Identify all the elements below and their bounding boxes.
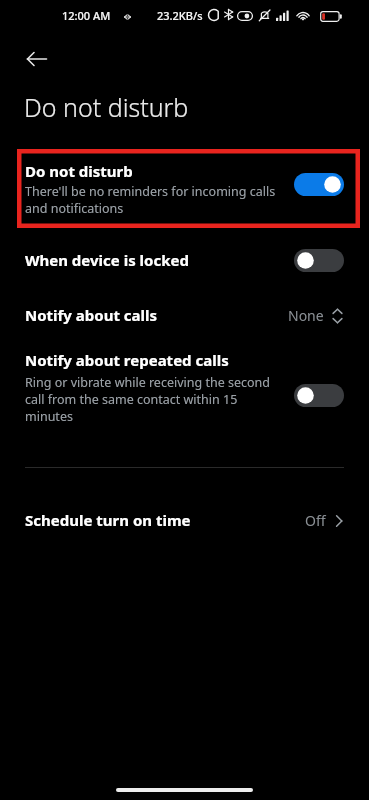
other: Change: [331, 307, 344, 325]
other: Open: [334, 512, 344, 530]
staticText: None: [288, 306, 324, 325]
button[interactable]: Notify about calls: [25, 298, 344, 332]
button[interactable]: Off: [294, 384, 344, 407]
staticText: Ring or vibrate while receiving the seco…: [25, 374, 275, 425]
button[interactable]: Back: [18, 40, 56, 78]
button[interactable]: Schedule turn on time: [25, 503, 344, 537]
button[interactable]: When device is locked: [25, 243, 344, 277]
button[interactable]: Do not disturb: [25, 159, 344, 221]
staticText: Notify about repeated calls: [25, 350, 229, 370]
staticText: When device is locked: [25, 250, 189, 270]
staticText: Notify about calls: [25, 305, 158, 325]
button[interactable]: On: [294, 173, 344, 196]
staticText: There'll be no reminders for incoming ca…: [25, 183, 277, 217]
button[interactable]: Notify about repeated calls: [25, 350, 344, 440]
staticText: 12:00 AM: [62, 8, 111, 23]
staticText: Do not disturb: [25, 161, 133, 181]
staticText: Off: [305, 511, 326, 530]
staticText: Schedule turn on time: [25, 510, 191, 530]
staticText: Do not disturb: [24, 90, 189, 124]
button[interactable]: Off: [294, 249, 344, 272]
staticText: 23.2KB/s: [157, 8, 203, 23]
